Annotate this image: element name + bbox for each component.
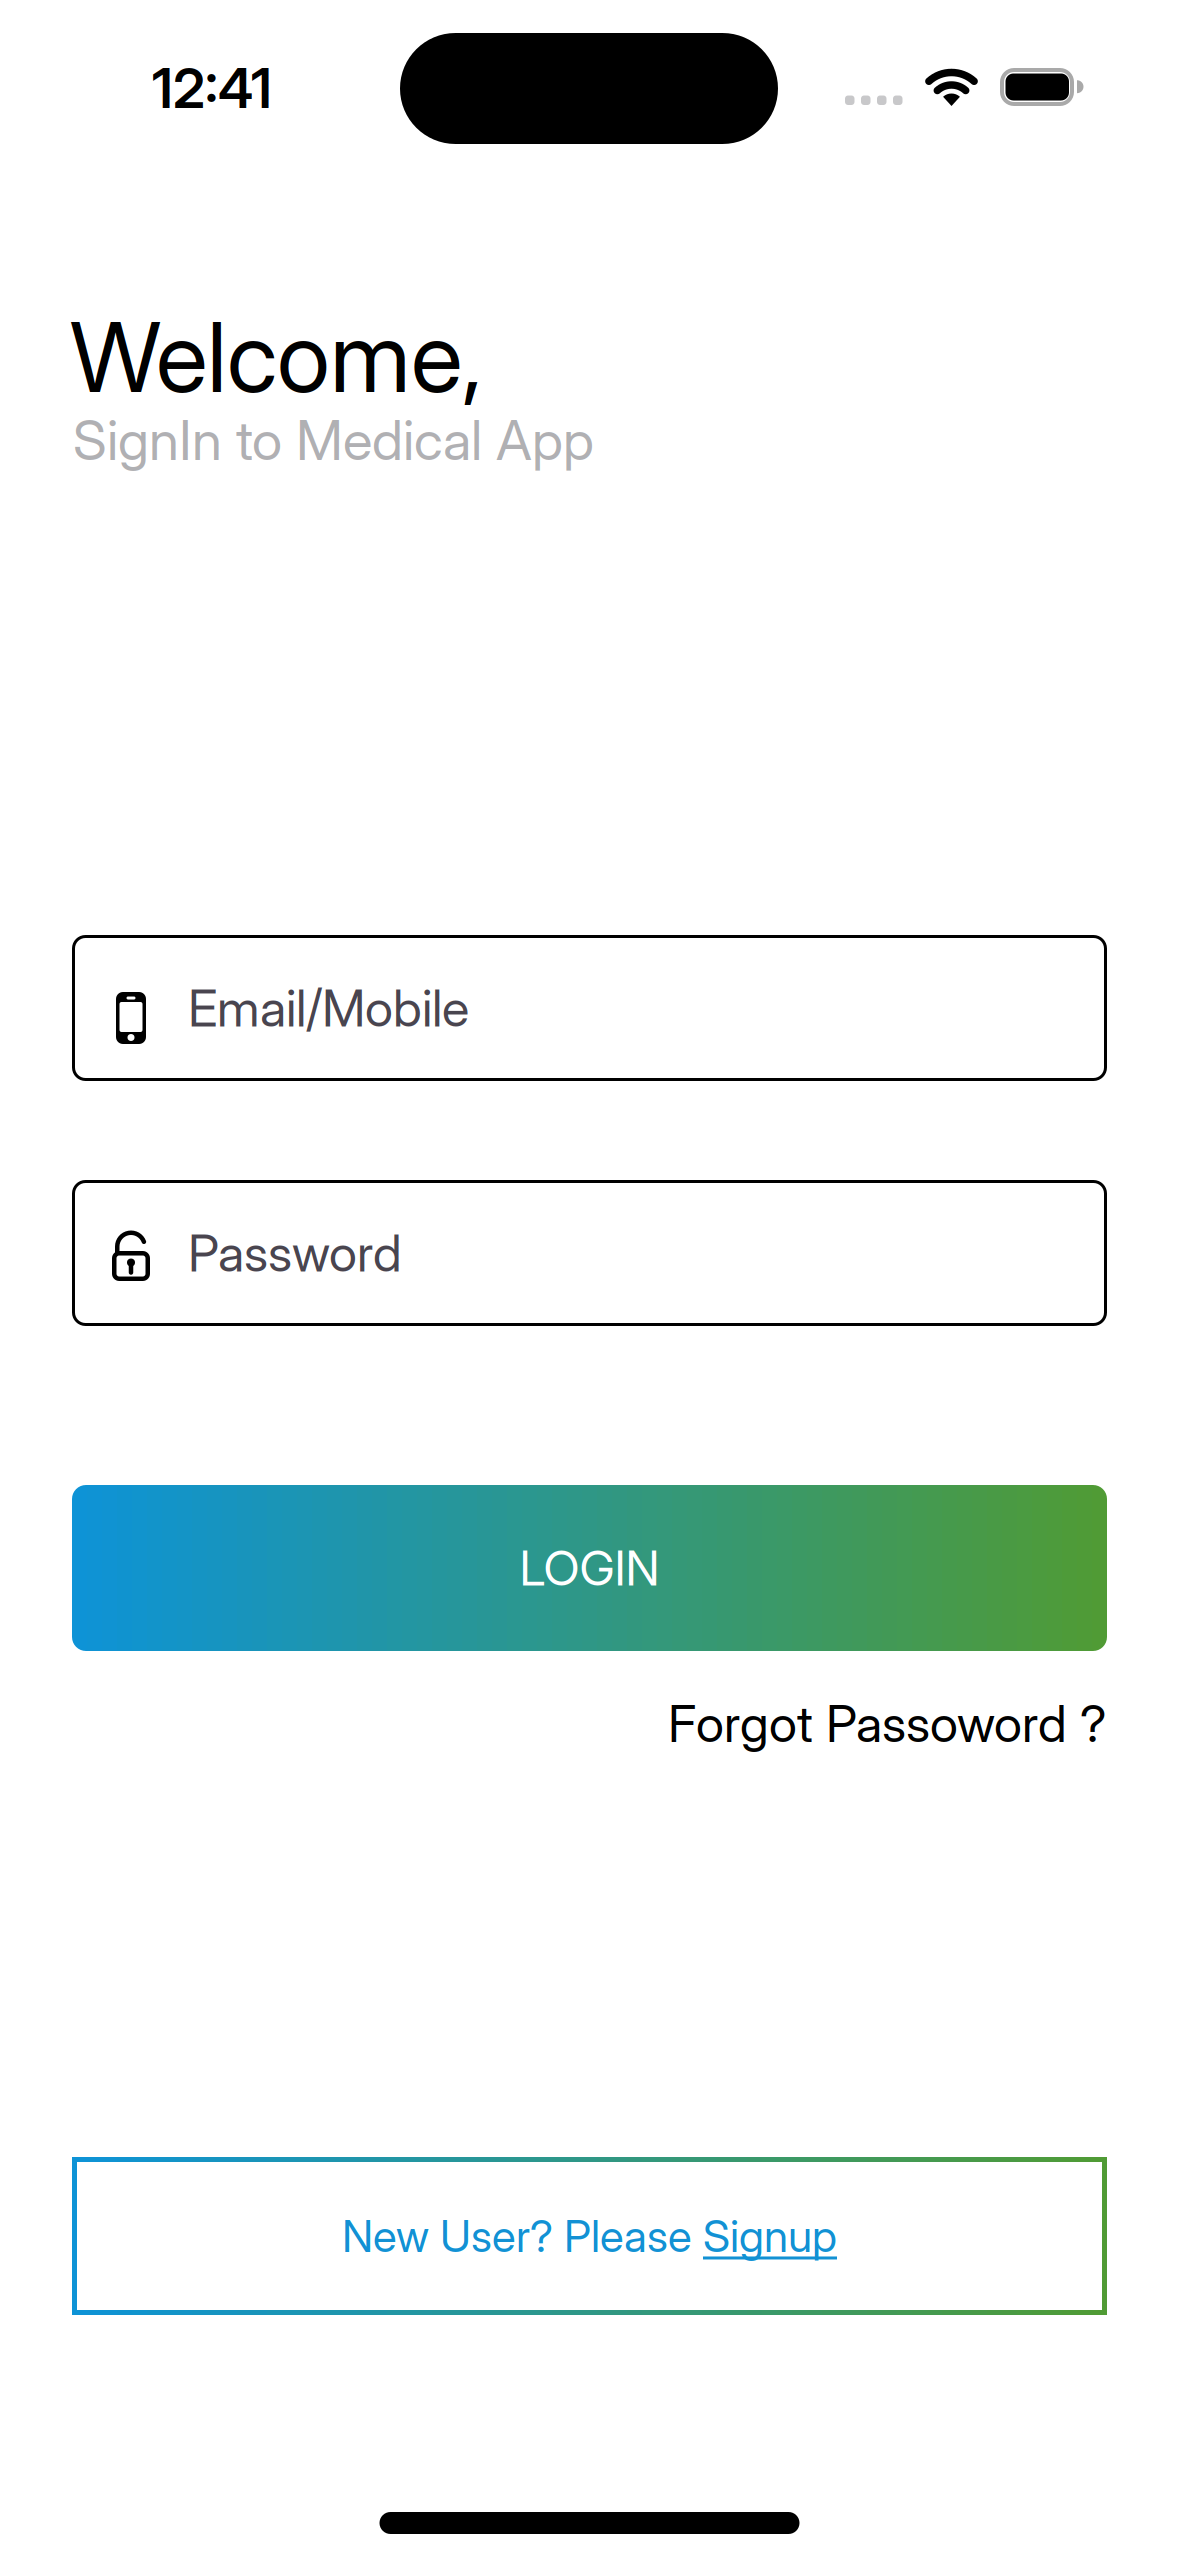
- staticText: LOGIN: [519, 1539, 659, 1597]
- button[interactable]: Password: [72, 1180, 1107, 1326]
- staticText: Password: [188, 1222, 402, 1284]
- button[interactable]: New User? Please Signup: [72, 2157, 1107, 2315]
- staticText: Email/Mobile: [188, 977, 469, 1039]
- button[interactable]: LOGIN: [72, 1485, 1107, 1651]
- staticText: New User? Please Signup: [342, 2209, 837, 2263]
- button[interactable]: Forgot Passoword ?: [668, 1693, 1107, 1754]
- staticText: Forgot Passoword ?: [668, 1693, 1107, 1754]
- staticText: SignIn to Medical App: [73, 407, 594, 473]
- button[interactable]: Email/Mobile: [72, 935, 1107, 1081]
- staticText: 12:41: [152, 55, 272, 121]
- staticText: Welcome,: [70, 299, 483, 415]
